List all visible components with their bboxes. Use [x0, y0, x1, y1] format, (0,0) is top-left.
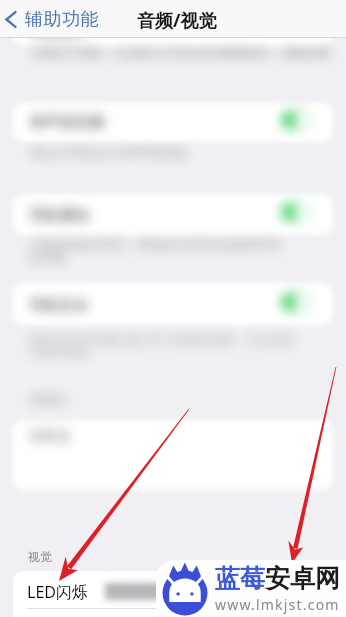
- staticText: 降低过响的音量以减少听力受损的风险，仅在使用: [30, 332, 294, 347]
- staticText: 在播放媒体内容时，降低提示音和其他系统声音: [30, 237, 282, 252]
- staticText: 背景音: [30, 392, 66, 407]
- staticText: 辅助功能: [25, 8, 100, 31]
- staticText: 音频/视觉: [137, 8, 217, 33]
- button[interactable]: [281, 293, 311, 311]
- button[interactable]: [281, 203, 311, 221]
- button[interactable]: [13, 420, 333, 490]
- button[interactable]: LED闪烁: [13, 571, 333, 617]
- staticText: 耳机安全: [29, 296, 89, 315]
- staticText: 蓝莓: [215, 563, 265, 594]
- staticText: LED闪烁: [27, 581, 88, 603]
- staticText: 安卓网: [265, 563, 340, 594]
- staticText: 视觉: [28, 549, 52, 564]
- staticText: 耳机通知: [29, 206, 89, 225]
- staticText: 的音量: [30, 250, 66, 265]
- staticText: 将左右声道合并为单声道音频: [30, 145, 186, 160]
- staticText: 背景音: [29, 428, 71, 446]
- staticText: 耳机电平: [29, 22, 89, 41]
- staticText: 耳机时有效: [30, 345, 90, 360]
- staticText: www.lmkjst.com: [215, 595, 340, 614]
- button[interactable]: [13, 0, 333, 46]
- staticText: 为免听力受损，当设备以不安全的音量播放时，调低音量: [30, 45, 330, 60]
- button[interactable]: [13, 194, 333, 235]
- staticText: 单声道音频: [29, 113, 104, 132]
- button[interactable]: [13, 283, 333, 325]
- button[interactable]: 辅助功能: [0, 2, 108, 37]
- button[interactable]: [13, 103, 333, 142]
- button[interactable]: [281, 111, 311, 129]
